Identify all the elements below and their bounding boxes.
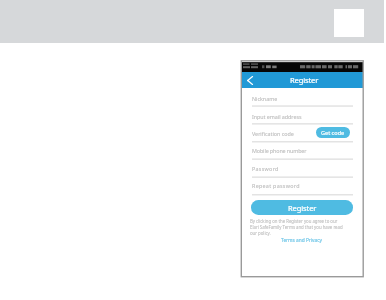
staticText: Get code bbox=[321, 129, 345, 137]
button[interactable]: Input email address bbox=[252, 111, 353, 122]
button[interactable]: Back bbox=[244, 72, 255, 88]
button[interactable]: Repeat password bbox=[252, 180, 353, 191]
staticText: Nickname bbox=[252, 95, 278, 102]
button[interactable]: Verification code bbox=[252, 128, 353, 139]
staticText: Register bbox=[290, 75, 319, 85]
button[interactable]: Get code bbox=[316, 127, 350, 138]
staticText: Terms and Privacy bbox=[281, 237, 322, 244]
button[interactable]: Password bbox=[252, 163, 353, 174]
staticText: Input email address bbox=[252, 113, 302, 120]
button[interactable]: Mobile phone number bbox=[252, 145, 353, 156]
staticText: Password bbox=[252, 165, 279, 172]
staticText: By clicking on the Register you agree to… bbox=[250, 218, 345, 236]
button[interactable]: Terms and Privacy bbox=[250, 237, 352, 244]
staticText: Mobile phone number bbox=[252, 147, 307, 154]
staticText: Register bbox=[288, 203, 317, 213]
staticText: Verification code bbox=[252, 130, 294, 137]
button[interactable]: Nickname bbox=[252, 93, 353, 104]
staticText: Repeat password bbox=[252, 182, 300, 189]
button[interactable]: Register bbox=[251, 200, 353, 215]
